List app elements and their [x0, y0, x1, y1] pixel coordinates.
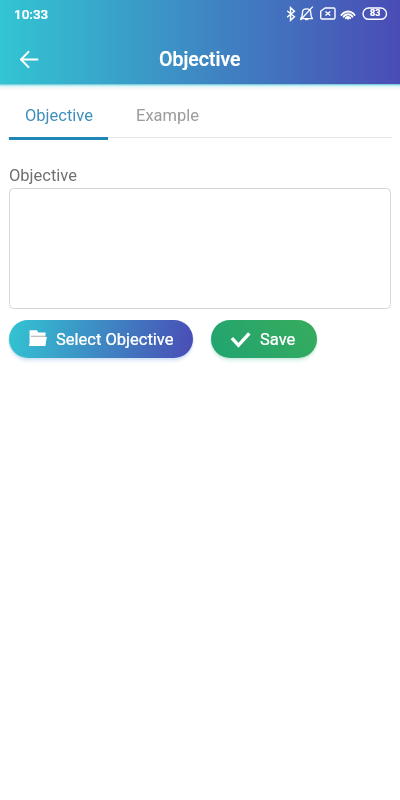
staticText: Objective [9, 166, 77, 185]
staticText: Save [260, 330, 296, 349]
button[interactable]: Objective [9, 90, 108, 140]
button[interactable]: Save [211, 320, 317, 358]
staticText: Example [136, 106, 200, 125]
staticText: 10:33 [14, 6, 49, 22]
button[interactable]: Back [9, 39, 49, 79]
button[interactable]: Example [118, 90, 218, 140]
staticText: Objective [159, 48, 241, 71]
button[interactable]: Select Objective [9, 320, 193, 358]
staticText: 83 [370, 8, 381, 19]
staticText: Select Objective [56, 330, 174, 349]
staticText: Objective [25, 106, 93, 125]
